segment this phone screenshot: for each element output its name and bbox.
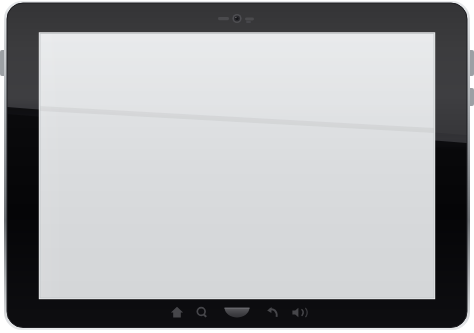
button[interactable]: Apps bbox=[223, 302, 251, 321]
button[interactable]: Back bbox=[264, 304, 281, 321]
button[interactable]: Volume bbox=[289, 304, 306, 321]
button[interactable]: Home bbox=[170, 304, 186, 321]
button[interactable]: Search bbox=[195, 304, 211, 321]
